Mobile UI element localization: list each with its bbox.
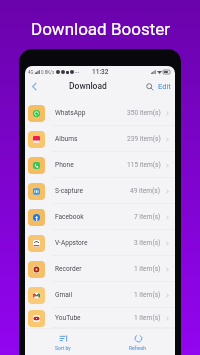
staticText: 11:32: [92, 68, 109, 76]
staticText: 239 item(s): [127, 135, 161, 143]
staticText: 115 item(s): [127, 161, 161, 169]
staticText: Edit: [158, 82, 171, 91]
button[interactable]: V-Appstore: [25, 230, 175, 256]
staticText: Phone: [55, 161, 74, 169]
staticText: 49 item(s): [130, 187, 161, 195]
staticText: 4G: [28, 70, 34, 75]
button[interactable]: Albums: [25, 126, 175, 152]
button[interactable]: S-capture: [25, 178, 175, 204]
button[interactable]: Recorder: [25, 256, 175, 282]
staticText: 1 item(s): [134, 265, 161, 273]
staticText: Recorder: [55, 265, 82, 273]
button[interactable]: Sort by: [25, 329, 100, 355]
staticText: •••: [75, 70, 79, 75]
button[interactable]: Refresh: [100, 329, 175, 355]
button[interactable]: WhatsApp: [25, 100, 175, 126]
staticText: WhatsApp: [55, 109, 86, 117]
staticText: Albums: [55, 135, 78, 143]
staticText: YouTube: [55, 314, 81, 322]
button[interactable]: Facebook: [25, 204, 175, 230]
staticText: 7 item(s): [134, 213, 161, 221]
staticText: 0.8K/s: [41, 70, 55, 75]
staticText: 3 item(s): [134, 239, 161, 247]
staticText: Sort by: [55, 345, 71, 351]
button[interactable]: Phone: [25, 152, 175, 178]
button[interactable]: Back: [25, 77, 43, 95]
staticText: 1 item(s): [134, 314, 161, 322]
staticText: Facebook: [55, 213, 84, 221]
staticText: Download: [69, 81, 107, 91]
staticText: S-capture: [55, 187, 83, 195]
staticText: 350 item(s): [127, 109, 161, 117]
button[interactable]: Edit: [157, 79, 172, 94]
button[interactable]: Gmail: [25, 282, 175, 308]
button[interactable]: YouTube: [25, 308, 175, 328]
staticText: V-Appstore: [55, 239, 88, 247]
staticText: Refresh: [129, 345, 147, 351]
staticText: Download Booster: [31, 19, 170, 39]
staticText: 1 item(s): [134, 291, 161, 299]
button[interactable]: Search: [143, 80, 156, 93]
staticText: Gmail: [55, 291, 73, 299]
